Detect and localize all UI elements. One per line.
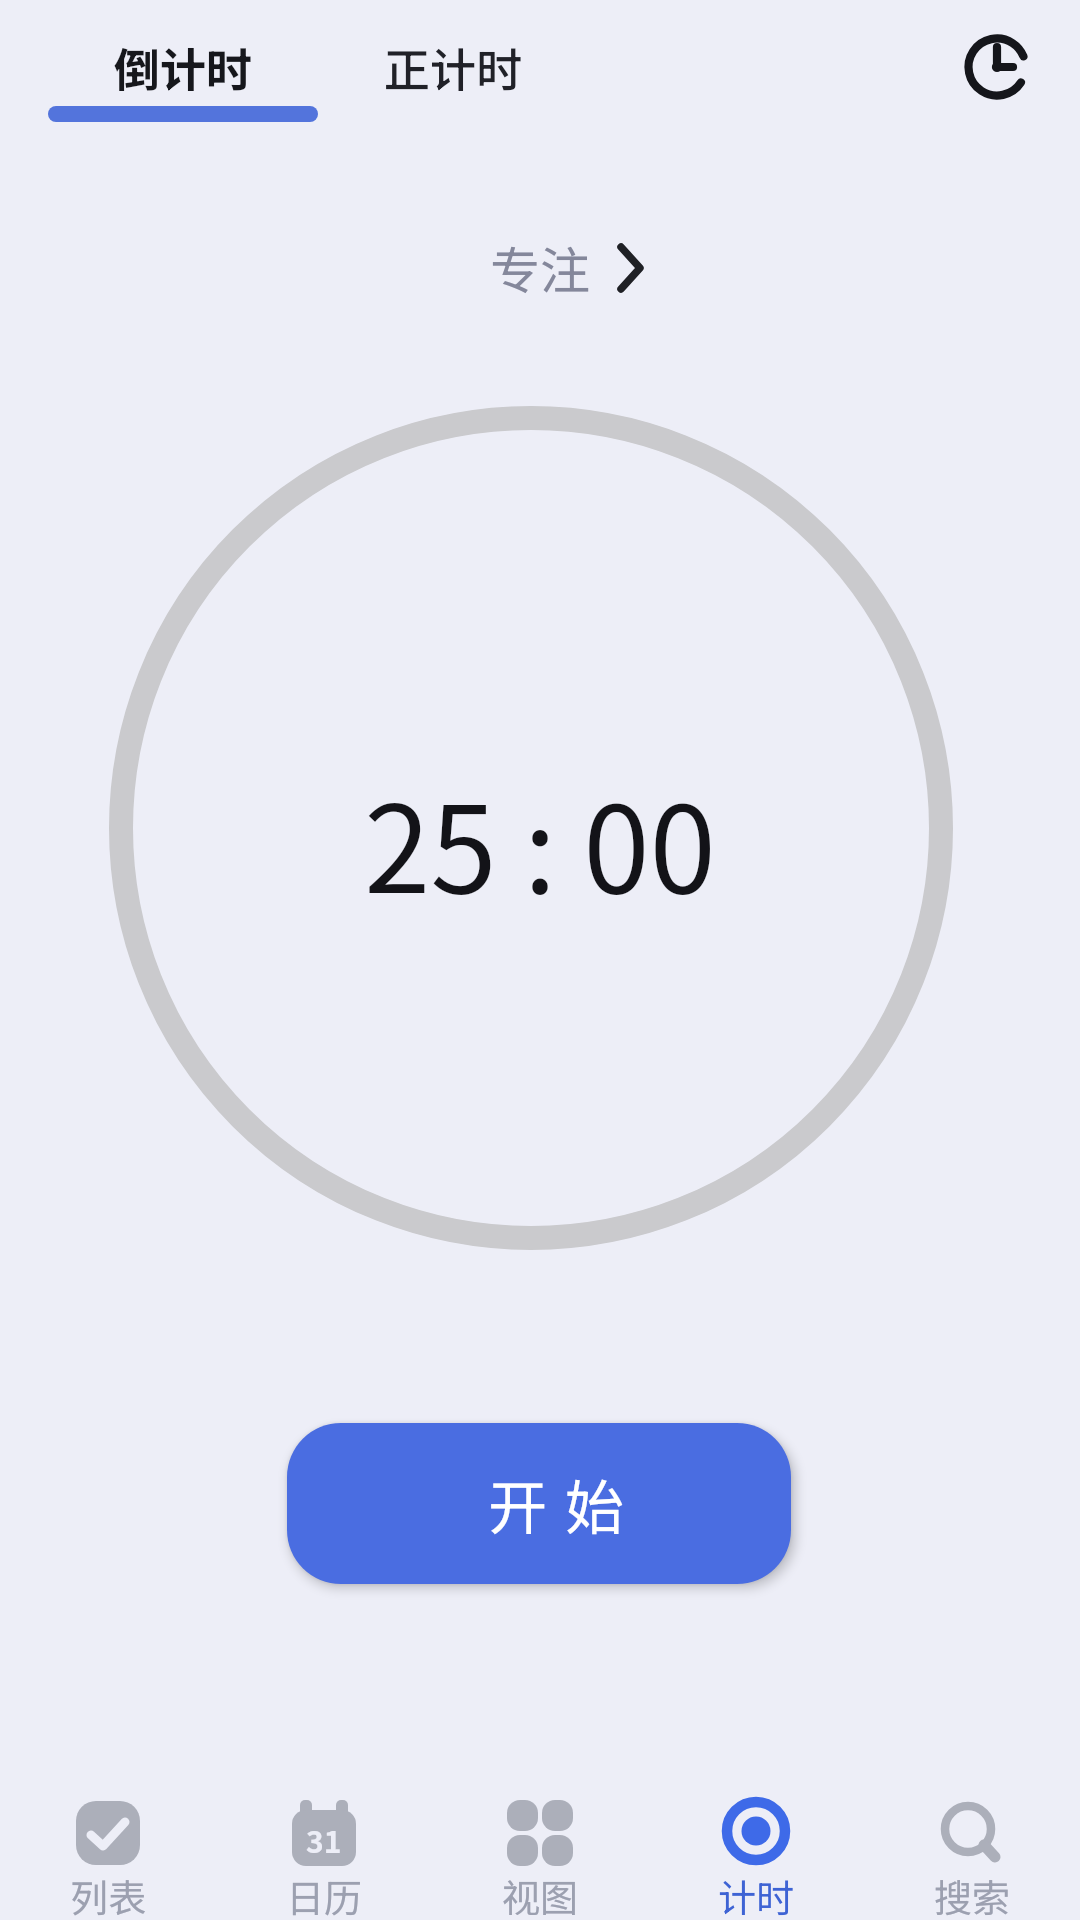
staticText: 31 [306,1818,342,1861]
button[interactable]: 列表 [0,1770,216,1920]
button[interactable]: 专注 [0,222,1080,312]
staticText: 开始 [488,1461,643,1546]
staticText: 列表 [70,1868,147,1920]
button[interactable]: 计时 [648,1770,864,1920]
button[interactable]: 31 [216,1770,432,1920]
button[interactable]: 正计时 [318,20,588,122]
staticText: 倒计时 [114,34,252,101]
button[interactable]: 开始 [287,1423,791,1584]
staticText: 25 : 00 [364,754,716,928]
button[interactable]: 视图 [432,1770,648,1920]
button[interactable] [957,27,1037,107]
button[interactable]: 倒计时 [48,20,318,122]
staticText: 计时 [718,1868,795,1920]
staticText: 日历 [286,1868,363,1920]
staticText: 专注 [490,231,590,303]
staticText: 搜索 [934,1868,1011,1920]
button[interactable]: 搜索 [864,1770,1080,1920]
staticText: 视图 [502,1868,579,1920]
staticText: 正计时 [384,34,522,101]
